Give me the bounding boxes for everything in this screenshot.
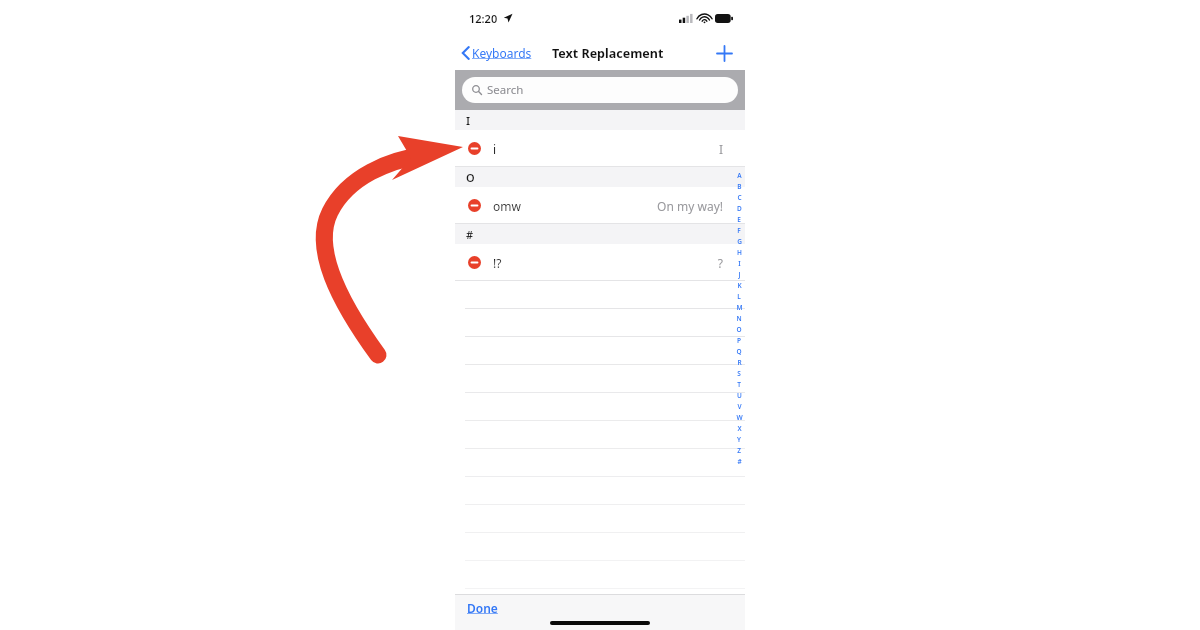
staticText: Keyboards <box>472 45 532 61</box>
staticText: H <box>737 248 742 257</box>
staticText: I <box>738 259 741 268</box>
staticText: Y <box>737 435 741 444</box>
staticText: D <box>737 204 742 213</box>
staticText: T <box>737 380 741 389</box>
button[interactable]: Delete i <box>455 130 745 167</box>
staticText: Q <box>736 347 742 356</box>
button[interactable] <box>455 449 745 477</box>
staticText: E <box>737 215 741 224</box>
staticText: J <box>738 270 741 279</box>
button[interactable]: Delete !? <box>455 244 745 281</box>
staticText: L <box>737 292 741 301</box>
staticText: # <box>466 227 474 242</box>
staticText: P <box>737 336 741 345</box>
staticText: R <box>737 358 742 367</box>
staticText: omw <box>493 198 521 214</box>
staticText: U <box>737 391 742 400</box>
staticText: On my way! <box>657 198 723 214</box>
staticText: A <box>737 171 742 180</box>
button[interactable] <box>455 281 745 309</box>
staticText: M <box>736 303 743 312</box>
button[interactable]: Add text replacement <box>713 42 735 64</box>
button[interactable] <box>455 309 745 337</box>
staticText: F <box>737 226 741 235</box>
staticText: S <box>737 369 741 378</box>
staticText: ? <box>717 255 723 271</box>
staticText: X <box>737 424 742 433</box>
button[interactable]: Delete omw <box>455 187 745 224</box>
staticText: Text Replacement <box>552 45 664 62</box>
staticText: G <box>737 237 742 246</box>
staticText: V <box>737 402 742 411</box>
staticText: K <box>737 281 742 290</box>
staticText: O <box>466 170 475 185</box>
button[interactable]: Done <box>467 600 498 616</box>
button[interactable] <box>455 337 745 365</box>
button[interactable]: Search <box>462 77 738 103</box>
staticText: N <box>736 314 742 323</box>
button[interactable] <box>455 617 745 630</box>
other: Delete !? <box>468 256 481 269</box>
staticText: I <box>718 141 723 157</box>
button[interactable]: Keyboards <box>455 41 536 65</box>
other: Delete omw <box>468 199 481 212</box>
staticText: Z <box>737 446 741 455</box>
staticText: O <box>736 325 742 334</box>
button[interactable]: Alphabet index <box>733 170 745 467</box>
staticText: i <box>493 141 497 157</box>
staticText: W <box>736 413 743 422</box>
staticText: Search <box>487 82 524 98</box>
staticText: 12:20 <box>469 11 498 26</box>
staticText: # <box>737 457 742 466</box>
button[interactable] <box>455 365 745 393</box>
button[interactable] <box>455 589 745 617</box>
staticText: I <box>466 113 471 128</box>
staticText: C <box>737 193 742 202</box>
button[interactable] <box>455 421 745 449</box>
staticText: !? <box>493 255 502 271</box>
other: Delete i <box>468 142 481 155</box>
staticText: B <box>737 182 742 191</box>
button[interactable] <box>455 393 745 421</box>
